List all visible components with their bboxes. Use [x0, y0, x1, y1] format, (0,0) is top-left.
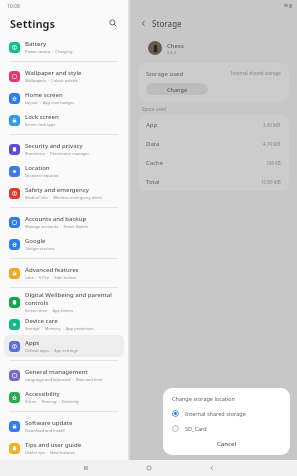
staticText: Useful tips · New features	[25, 450, 76, 455]
staticText: Google	[25, 237, 46, 245]
button[interactable]: Security and privacy	[4, 138, 124, 160]
button[interactable]: Home screen	[4, 87, 124, 109]
staticText: Download and install	[25, 428, 65, 433]
button[interactable]: Change	[146, 83, 208, 95]
button[interactable]: Wallpaper and style	[4, 65, 124, 87]
staticText: Battery	[25, 40, 47, 48]
staticText: Internal shared storage	[231, 70, 281, 76]
staticText: Screen lock type	[25, 122, 56, 127]
staticText: Home screen	[25, 91, 63, 99]
button[interactable]: Internal shared storage	[172, 408, 281, 419]
staticText: Manage accounts · Smart Switch	[25, 224, 88, 229]
staticText: 4.74 MB	[263, 141, 281, 147]
staticText: General management	[25, 368, 88, 376]
staticText: Language and keyboard · Date and time	[25, 377, 103, 382]
button[interactable]: Cancel	[172, 438, 281, 450]
staticText: Total	[146, 178, 160, 186]
staticText: Lock screen	[25, 113, 59, 121]
staticText: Change	[167, 86, 188, 93]
staticText: Labs · S Pen · Side button	[25, 275, 77, 280]
staticText: Location	[25, 164, 50, 172]
button[interactable]: Safety and emergency	[4, 182, 124, 204]
staticText: Accounts and backup	[25, 215, 87, 223]
staticText: Cancel	[217, 440, 237, 448]
staticText: 108 KB	[266, 160, 281, 166]
button[interactable]: About tablet	[4, 459, 124, 476]
staticText: Medical info · Wireless emergency alerts	[25, 195, 103, 200]
staticText: Digital Wellbeing and parental controls	[25, 291, 120, 307]
staticText: Power saving · Charging	[25, 49, 73, 54]
staticText: Safety and emergency	[25, 186, 89, 194]
staticText: Space used	[142, 106, 166, 112]
staticText: Default apps · App settings	[25, 348, 78, 353]
staticText: 10.89 MB	[261, 179, 281, 185]
staticText: Internal shared storage	[185, 410, 246, 417]
button[interactable]: Device care	[4, 313, 124, 335]
staticText: Security and privacy	[25, 142, 83, 150]
staticText: Google services	[25, 246, 55, 251]
staticText: Layout · App icon badges	[25, 100, 75, 105]
staticText: 10:08	[7, 3, 20, 10]
button[interactable]: Recents	[79, 461, 93, 475]
staticText: Settings	[10, 16, 56, 31]
staticText: Data	[146, 140, 160, 148]
button[interactable]: Google	[4, 233, 124, 255]
staticText: Storage used	[146, 70, 184, 78]
button[interactable]: Search	[106, 16, 120, 30]
staticText: Storage	[152, 18, 182, 29]
button[interactable]: Digital Wellbeing and parental controls	[4, 291, 124, 313]
staticText: SD_Card	[185, 425, 207, 432]
button[interactable]: App	[138, 115, 289, 134]
button[interactable]: General management	[4, 364, 124, 386]
staticText: Chess	[167, 42, 184, 50]
button[interactable]: Back	[136, 16, 150, 30]
staticText: Software update	[25, 419, 73, 427]
button[interactable]: Software update	[4, 415, 124, 437]
staticText: App	[146, 121, 158, 129]
staticText: 2.8.0	[167, 50, 177, 55]
staticText: Accessibility	[25, 390, 60, 398]
button[interactable]: Tips and user guide	[4, 437, 124, 459]
staticText: Device care	[25, 317, 58, 325]
staticText: Location requests	[25, 173, 59, 178]
button[interactable]: Lock screen	[4, 109, 124, 131]
staticText: 3.43 MB	[263, 122, 281, 128]
staticText: Cache	[146, 159, 164, 167]
button[interactable]: Home	[142, 461, 156, 475]
staticText: Screen time · App timers	[25, 308, 73, 313]
staticText: Wallpaper and style	[25, 69, 82, 77]
staticText: Apps	[25, 339, 40, 347]
staticText: Storage · Memory · App protection	[25, 326, 94, 331]
button[interactable]: SD_Card	[172, 423, 281, 434]
button[interactable]: Back	[205, 461, 219, 475]
staticText: Change storage location	[172, 395, 235, 402]
button[interactable]: Cache	[138, 153, 289, 172]
button[interactable]: Location	[4, 160, 124, 182]
button[interactable]: Accessibility	[4, 386, 124, 408]
staticText: Tips and user guide	[25, 441, 82, 449]
button[interactable]: Data	[138, 134, 289, 153]
staticText: Wallpapers · Colour palette	[25, 78, 78, 83]
staticText: Advanced features	[25, 266, 79, 274]
button[interactable]: Battery	[4, 36, 124, 58]
button[interactable]: Advanced features	[4, 262, 124, 284]
staticText: Biometrics · Permission manager	[25, 151, 90, 156]
button[interactable]: Accounts and backup	[4, 211, 124, 233]
button[interactable]: Total	[138, 172, 289, 191]
staticText: Vision · Hearing · Dexterity	[25, 399, 79, 404]
button[interactable]: Apps	[4, 335, 124, 357]
